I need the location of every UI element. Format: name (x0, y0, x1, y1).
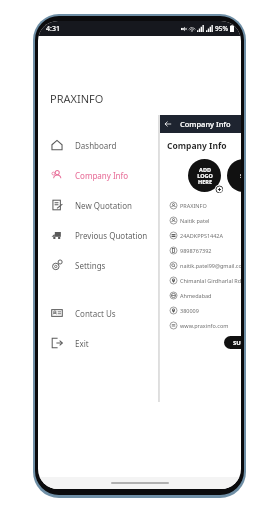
button[interactable]: Company Info (38, 160, 241, 190)
button[interactable]: www.praxinfo.com (167, 319, 241, 331)
staticText: naitik.patel99@gmail.com (180, 262, 241, 269)
button[interactable]: PRAXINFO (167, 199, 241, 211)
button[interactable]: naitik.patel99@gmail.com (167, 259, 241, 271)
staticText: 9898767392 (180, 247, 212, 254)
staticText: Ahmedabad (180, 292, 212, 299)
staticText: PRAXINFO (180, 202, 207, 209)
staticText: 95% (215, 24, 228, 33)
staticText: ADD LOGO HERE (197, 166, 213, 185)
button[interactable]: Shop (227, 159, 241, 192)
staticText: PRAXINFO (50, 91, 104, 106)
staticText: www.praxinfo.com (180, 322, 229, 329)
staticText: Company Info (75, 170, 129, 181)
button[interactable]: 380009 (167, 304, 241, 316)
staticText: Naitik patel (180, 217, 210, 224)
staticText: SUBMIT (233, 339, 241, 347)
button[interactable]: Add logo (188, 159, 221, 192)
staticText: Company Info (180, 119, 231, 129)
button[interactable]: Naitik patel (167, 214, 241, 226)
button[interactable]: SUBMIT (224, 336, 241, 349)
button[interactable]: Ahmedabad (167, 289, 241, 301)
button[interactable]: Contact Us (38, 298, 241, 328)
button[interactable]: Chimanlal Girdharlal Rd (167, 274, 241, 286)
staticText: Company Info (167, 140, 227, 152)
staticText: 4:31 (46, 24, 60, 34)
button[interactable]: Dashboard (38, 130, 241, 160)
staticText: SH (240, 172, 241, 179)
button[interactable]: 24ADKPPS1442A (167, 229, 241, 241)
staticText: 380009 (180, 307, 199, 314)
button[interactable]: Back (160, 116, 176, 132)
staticText: Settings (75, 260, 106, 271)
button[interactable]: New Quotation (38, 190, 241, 220)
staticText: Chimanlal Girdharlal Rd (180, 277, 241, 284)
staticText: Exit (75, 338, 89, 349)
staticText: Dashboard (75, 140, 117, 151)
staticText: 24ADKPPS1442A (180, 232, 223, 239)
button[interactable]: Exit (38, 328, 241, 358)
staticText: Contact Us (75, 308, 116, 319)
staticText: New Quotation (75, 200, 132, 211)
button[interactable]: 9898767392 (167, 244, 241, 256)
button[interactable]: Settings (38, 250, 241, 280)
button[interactable]: Add (215, 185, 223, 193)
staticText: Previous Quotation (75, 230, 148, 241)
button[interactable]: Previous Quotation (38, 220, 241, 250)
